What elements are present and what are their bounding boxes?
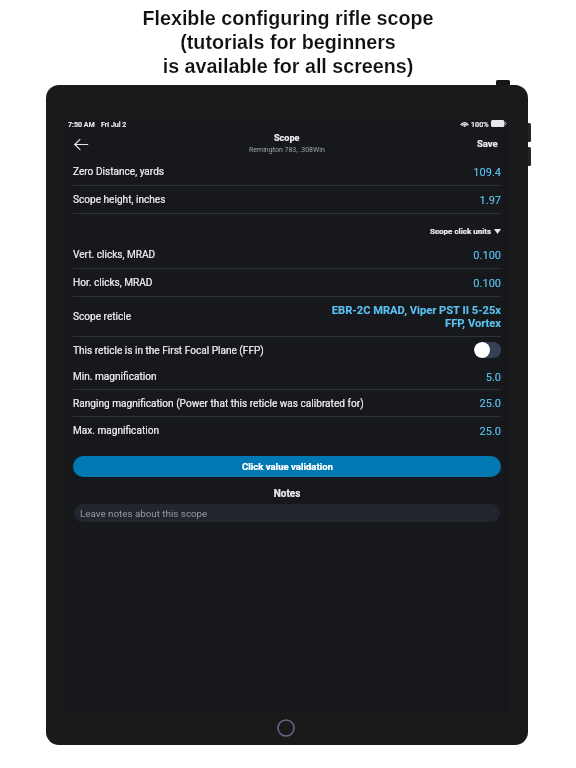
staticText: Scope bbox=[274, 133, 300, 144]
staticText: Remington 783, .308Win bbox=[249, 146, 325, 154]
button[interactable]: Back bbox=[68, 132, 94, 156]
staticText: 0.100 bbox=[473, 249, 501, 262]
staticText: Fri Jul 2 bbox=[101, 120, 127, 128]
staticText: Zero Distance, yards bbox=[73, 166, 473, 178]
button[interactable]: Click value validation bbox=[73, 456, 501, 477]
staticText: 7:50 AM bbox=[68, 120, 95, 128]
staticText: Scope height, inches bbox=[73, 194, 479, 206]
staticText: 109.4 bbox=[473, 166, 501, 179]
button[interactable]: Leave notes about this scope bbox=[74, 504, 500, 522]
staticText: Scope reticle bbox=[73, 311, 331, 323]
staticText: Flexible configuring rifle scope (tutori… bbox=[0, 7, 576, 77]
button[interactable]: Vert. clicks, MRAD bbox=[65, 241, 509, 269]
staticText: Ranging magnification (Power that this r… bbox=[73, 398, 479, 410]
button[interactable]: Min. magnification bbox=[65, 364, 509, 390]
staticText: 25.0 bbox=[479, 425, 501, 438]
staticText: Scope click units bbox=[430, 227, 492, 236]
staticText: 1.97 bbox=[479, 194, 501, 207]
button[interactable]: Scope height, inches bbox=[65, 186, 509, 214]
staticText: Click value validation bbox=[242, 461, 333, 472]
staticText: This reticle is in the First Focal Plane… bbox=[73, 345, 474, 357]
button[interactable]: Scope click units bbox=[65, 214, 509, 241]
staticText: Save bbox=[477, 138, 498, 149]
staticText: Min. magnification bbox=[73, 371, 485, 383]
staticText: Vert. clicks, MRAD bbox=[73, 249, 473, 261]
staticText: Leave notes about this scope bbox=[80, 508, 208, 519]
button[interactable]: Ranging magnification (Power that this r… bbox=[65, 390, 509, 417]
staticText: Max. magnification bbox=[73, 425, 479, 437]
staticText: 100% bbox=[471, 120, 489, 128]
staticText: 25.0 bbox=[479, 397, 501, 410]
staticText: Notes bbox=[65, 488, 509, 500]
staticText: 0.100 bbox=[473, 277, 501, 290]
staticText: 5.0 bbox=[485, 371, 501, 384]
button[interactable]: Save bbox=[477, 138, 498, 149]
button[interactable]: Hor. clicks, MRAD bbox=[65, 269, 509, 297]
button[interactable]: Home bbox=[277, 719, 295, 737]
staticText: Hor. clicks, MRAD bbox=[73, 277, 473, 289]
staticText: EBR-2C MRAD, Viper PST II 5-25x FFP, Vor… bbox=[331, 304, 501, 330]
button[interactable]: Zero Distance, yards bbox=[65, 158, 509, 186]
button[interactable]: This reticle is in the First Focal Plane… bbox=[65, 337, 509, 364]
button[interactable]: Scope reticle bbox=[65, 297, 509, 337]
button[interactable]: Max. magnification bbox=[65, 417, 509, 445]
